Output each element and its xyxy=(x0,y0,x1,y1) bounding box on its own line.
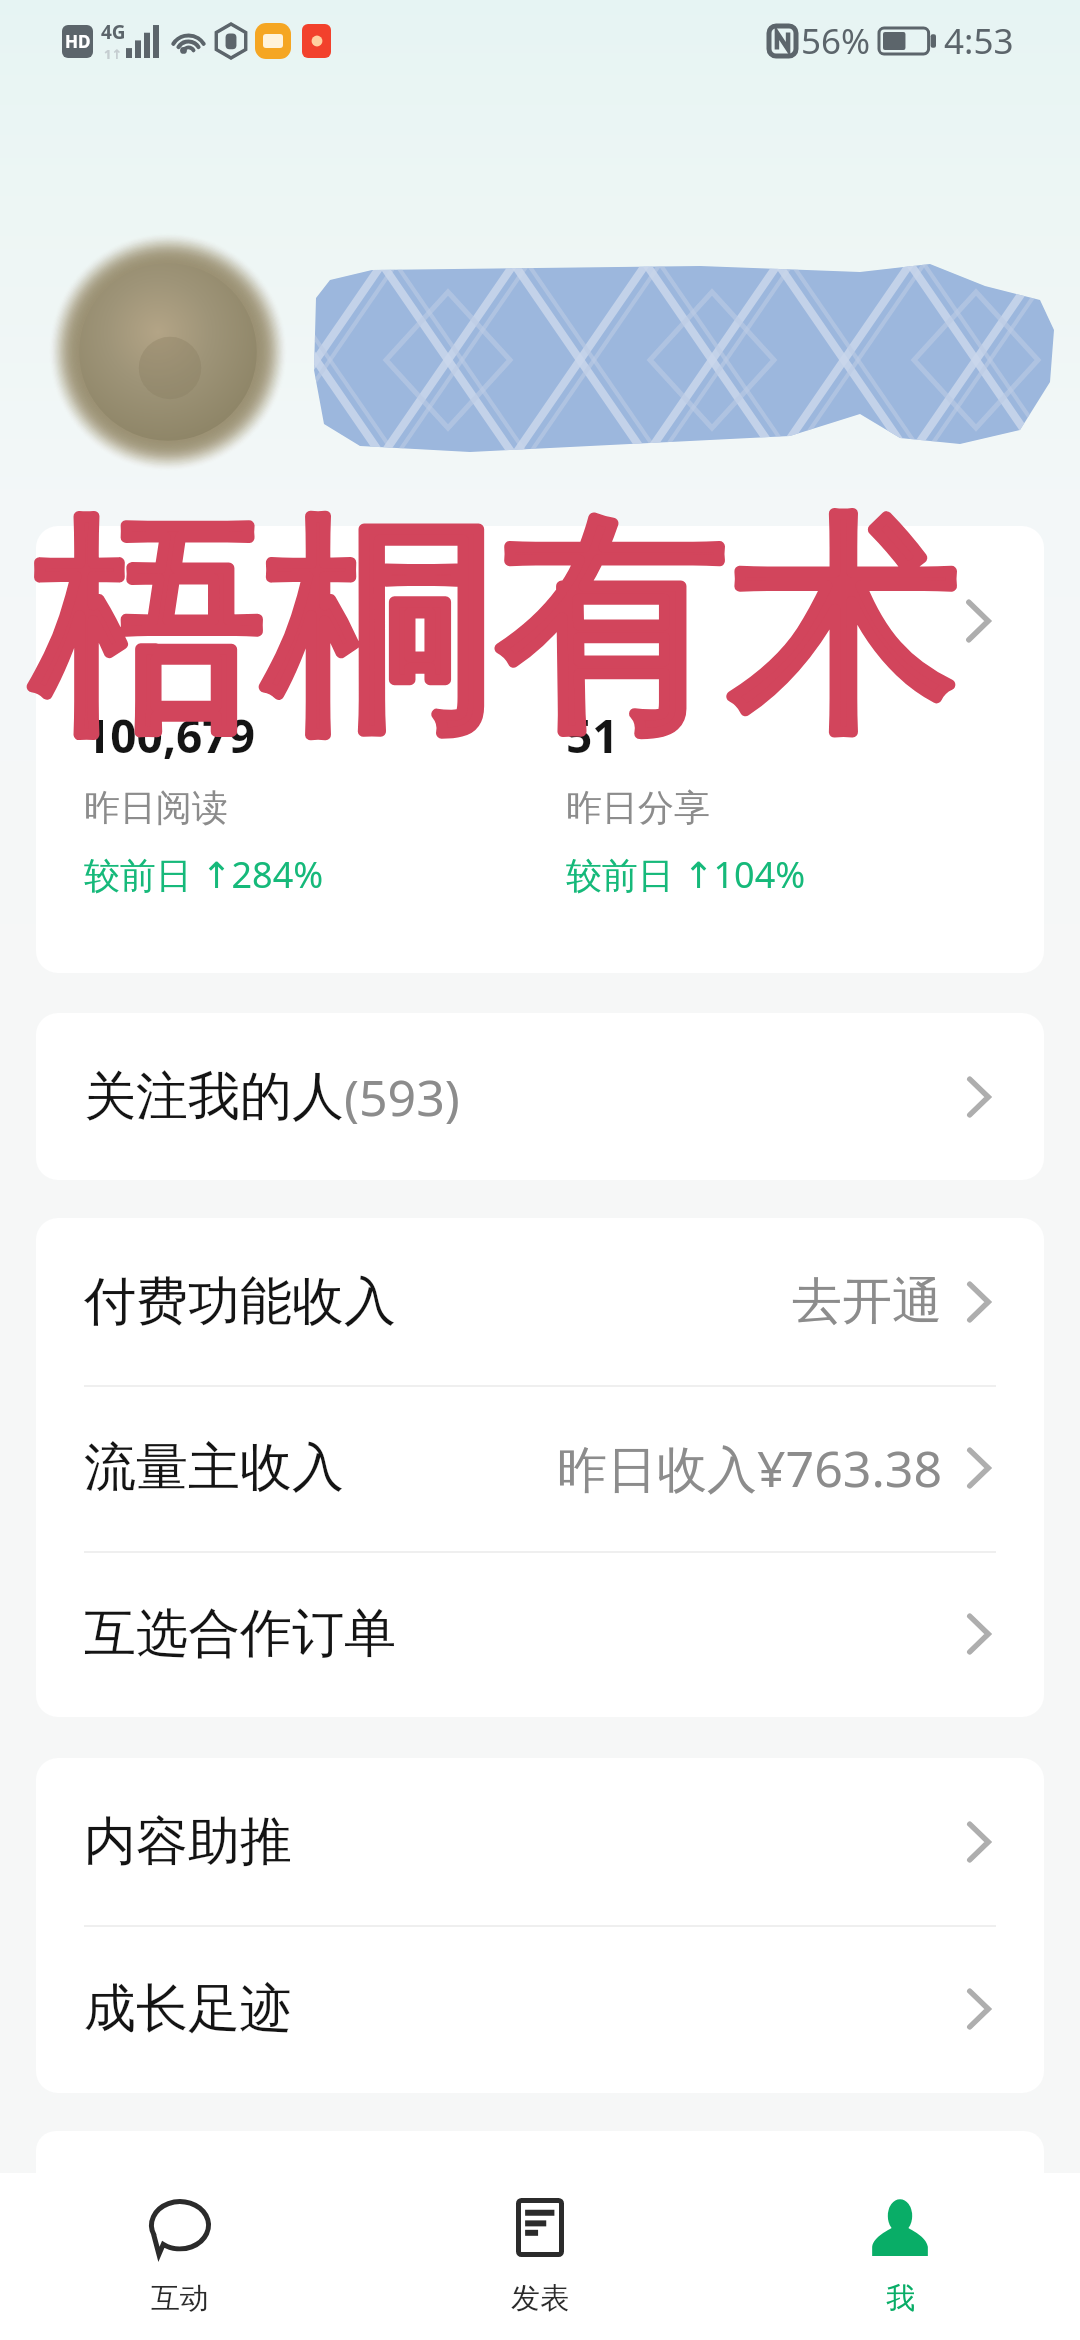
button[interactable]: 发表 xyxy=(360,2173,720,2340)
staticText: 互选合作订单 xyxy=(84,1601,396,1667)
staticText: 昨日阅读 xyxy=(84,785,228,830)
staticText: 发表 xyxy=(511,2280,569,2317)
staticText: 去开通 xyxy=(792,1270,942,1333)
staticText: 51 xyxy=(566,704,619,767)
button[interactable]: 互选合作订单 xyxy=(36,1551,1044,1717)
staticText: 付费功能收入 xyxy=(84,1269,396,1335)
button[interactable]: 我 xyxy=(720,2173,1080,2340)
staticText: 较前日 ↑104% xyxy=(566,850,806,899)
staticText: 4G xyxy=(101,19,126,45)
button[interactable]: 流量主收入 xyxy=(36,1385,1044,1551)
button[interactable]: 内容助推 xyxy=(36,1758,1044,1925)
button[interactable]: 互动 xyxy=(0,2173,360,2340)
staticText: (593) xyxy=(344,1063,460,1131)
staticText: 梧桐有术 xyxy=(33,481,961,773)
staticText: 内容助推 xyxy=(84,1809,292,1875)
button[interactable]: 关注我的人 xyxy=(36,1013,1044,1180)
staticText: 成长足迹 xyxy=(84,1976,292,2042)
staticText: 梧桐有术 xyxy=(33,481,961,773)
staticText: 关注我的人 xyxy=(84,1064,344,1130)
button[interactable]: 付费功能收入 xyxy=(36,1218,1044,1385)
button[interactable]: 成长足迹 xyxy=(36,1925,1044,2093)
staticText: HD xyxy=(65,30,91,53)
staticText: 4:53 xyxy=(944,17,1014,65)
staticText: 昨日收入¥763.38 xyxy=(557,1434,942,1502)
staticText: 互动 xyxy=(151,2280,209,2317)
staticText: 昨日分享 xyxy=(566,785,710,830)
staticText: 56% xyxy=(801,17,871,65)
staticText: 较前日 ↑284% xyxy=(84,850,324,899)
button[interactable]: 100,679 xyxy=(36,526,1044,973)
staticText: 1↑ xyxy=(104,45,123,63)
staticText: 流量主收入 xyxy=(84,1435,344,1501)
staticText: 100,679 xyxy=(84,704,255,767)
staticText: 我 xyxy=(886,2280,915,2317)
